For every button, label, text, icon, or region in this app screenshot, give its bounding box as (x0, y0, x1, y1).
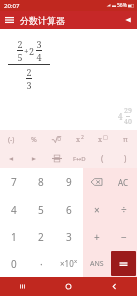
button[interactable]: 6 (55, 196, 83, 223)
button[interactable]: ( (91, 149, 114, 168)
staticText: ×10 (60, 258, 74, 269)
button[interactable]: 7 (0, 168, 27, 196)
button[interactable]: 9 (55, 168, 83, 196)
button[interactable]: ×10 (55, 250, 83, 277)
button[interactable]: 0 (0, 250, 27, 277)
button[interactable]: AC (110, 168, 137, 196)
staticText: 0 (11, 257, 17, 271)
button[interactable]: Recent apps (0, 277, 45, 296)
staticText: x (98, 135, 103, 145)
button[interactable]: ) (114, 149, 137, 168)
staticText: 7 (11, 175, 17, 189)
button[interactable]: π (114, 130, 137, 149)
staticText: π (123, 135, 128, 145)
staticText: · (40, 257, 43, 271)
staticText: × (94, 203, 100, 217)
button[interactable]: 3 (55, 223, 83, 250)
button[interactable]: Delete (83, 168, 110, 196)
button[interactable]: x (91, 130, 114, 149)
button[interactable]: ANS (83, 250, 110, 277)
button[interactable]: Back (91, 277, 137, 296)
staticText: 2 (17, 38, 23, 50)
staticText: 5 (38, 203, 44, 217)
button[interactable]: Move left (0, 149, 22, 168)
staticText: AC (118, 177, 129, 188)
button[interactable]: % (22, 130, 45, 149)
staticText: F↔D (73, 155, 86, 163)
button[interactable]: Square root (45, 130, 68, 149)
button[interactable]: 8 (27, 168, 55, 196)
staticText: 6 (66, 203, 72, 217)
staticText: 4 (118, 111, 123, 122)
staticText: + (94, 230, 100, 244)
button[interactable]: Previous (119, 11, 137, 29)
staticText: x (76, 135, 81, 145)
staticText: 56% (117, 2, 127, 9)
staticText: ) (124, 153, 127, 164)
button[interactable]: F↔D (68, 149, 91, 168)
staticText: − (121, 230, 127, 244)
staticText: 2 (81, 134, 84, 141)
button[interactable]: 2 (27, 223, 55, 250)
staticText: ANS (90, 259, 104, 269)
staticText: 4 (11, 203, 17, 217)
staticText: 8 (38, 175, 44, 189)
staticText: ÷ (121, 203, 127, 217)
staticText: + (24, 45, 29, 56)
staticText: 2 (38, 230, 44, 244)
staticText: % (31, 135, 37, 145)
staticText: 2 (29, 45, 35, 57)
button[interactable]: Menu (0, 11, 18, 29)
staticText: 9 (66, 175, 72, 189)
staticText: 3 (36, 38, 42, 50)
button[interactable]: 5 (27, 196, 55, 223)
staticText: x (74, 257, 78, 265)
staticText: (-) (8, 135, 15, 145)
staticText: 5 (17, 51, 23, 63)
button[interactable]: × (83, 196, 110, 223)
button[interactable]: (-) (0, 130, 22, 149)
button[interactable]: x (68, 130, 91, 149)
staticText: ( (101, 153, 104, 164)
staticText: 3 (26, 79, 32, 91)
staticText: 1 (11, 230, 17, 244)
staticText: 4 (36, 51, 42, 63)
button[interactable]: Home (45, 277, 91, 296)
staticText: 40 (124, 117, 132, 127)
staticText: □ (103, 134, 108, 140)
button[interactable]: ÷ (110, 196, 137, 223)
button[interactable]: · (27, 250, 55, 277)
button[interactable]: + (83, 223, 110, 250)
button[interactable]: 1 (0, 223, 27, 250)
button[interactable]: Fraction (45, 149, 68, 168)
staticText: 2 (26, 66, 32, 78)
staticText: 29 (124, 106, 132, 116)
button[interactable]: − (110, 223, 137, 250)
staticText: 20:07 (4, 2, 20, 10)
button[interactable]: Equals (111, 251, 136, 276)
staticText: 3 (66, 230, 72, 244)
button[interactable]: Move right (22, 149, 45, 168)
button[interactable]: 4 (0, 196, 27, 223)
staticText: 分数计算器 (20, 15, 65, 26)
